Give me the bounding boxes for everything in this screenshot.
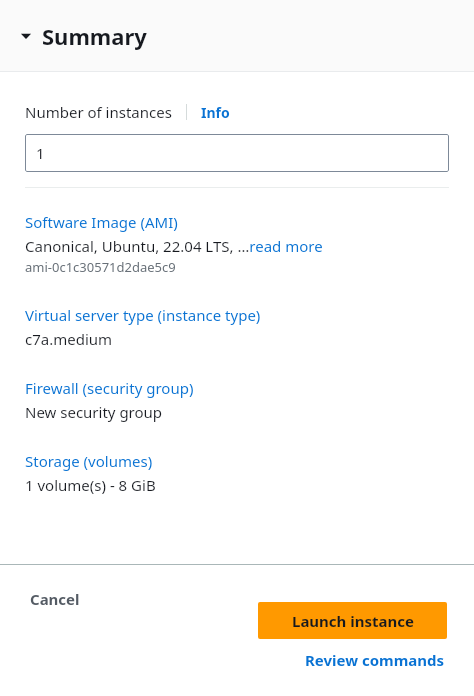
- staticText: Launch instance: [292, 611, 414, 631]
- staticText: Cancel: [30, 589, 80, 609]
- other: Collapse Summary: [20, 30, 32, 42]
- staticText: 1 volume(s) - 8 GiB: [25, 475, 156, 495]
- staticText: Summary: [42, 21, 147, 51]
- staticText: c7a.medium: [25, 329, 113, 349]
- button[interactable]: Firewall (security group): [25, 378, 194, 398]
- button[interactable]: Launch instance: [258, 602, 447, 639]
- button[interactable]: Cancel: [12, 579, 98, 619]
- button[interactable]: 1: [25, 134, 449, 172]
- staticText: Canonical, Ubuntu, 22.04 LTS, …read more: [25, 236, 323, 256]
- button[interactable]: Info: [201, 103, 230, 122]
- button[interactable]: Collapse Summary: [0, 0, 474, 72]
- button[interactable]: Software Image (AMI): [25, 212, 178, 232]
- staticText: New security group: [25, 402, 163, 422]
- staticText: Number of instances: [25, 102, 172, 122]
- button[interactable]: Virtual server type (instance type): [25, 305, 261, 325]
- staticText: 1: [36, 143, 45, 163]
- button[interactable]: Review commands: [303, 647, 447, 673]
- staticText: ami-0c1c30571d2dae5c9: [25, 258, 176, 276]
- button[interactable]: Storage (volumes): [25, 451, 153, 471]
- staticText: Review commands: [305, 650, 445, 670]
